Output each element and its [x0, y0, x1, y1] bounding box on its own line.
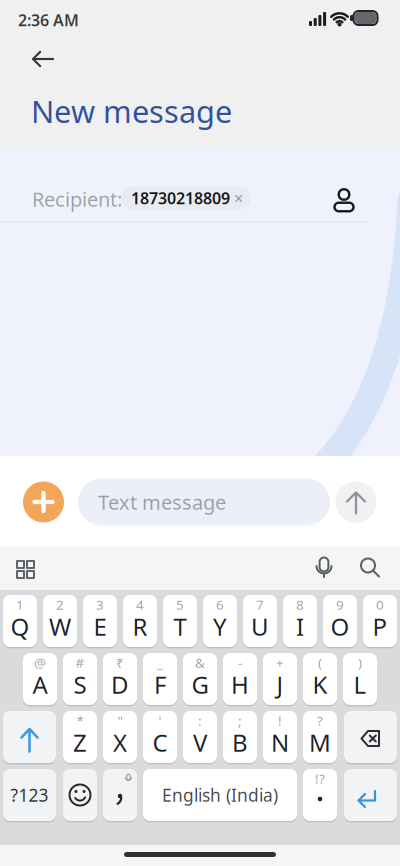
button[interactable]: ) — [343, 653, 377, 705]
staticText: 18730218809 — [131, 187, 230, 209]
button[interactable]: ? — [303, 711, 337, 763]
staticText: D — [111, 669, 129, 700]
staticText: U — [251, 611, 269, 642]
button[interactable]: 7 — [243, 595, 277, 647]
staticText: P — [372, 611, 387, 642]
staticText: New message — [31, 91, 232, 131]
staticText: L — [353, 669, 366, 700]
staticText: Z — [73, 727, 87, 758]
button[interactable]: " — [103, 711, 137, 763]
staticText: ?123 — [10, 783, 48, 806]
button[interactable]: _ — [143, 653, 177, 705]
button[interactable]: Add attachment — [23, 481, 64, 522]
staticText: W — [49, 611, 71, 642]
button[interactable]: Text message — [78, 478, 330, 525]
button[interactable]: Emoji — [63, 769, 97, 821]
staticText: ) — [358, 654, 362, 671]
staticText: S — [73, 669, 86, 700]
staticText: @ — [34, 654, 46, 671]
staticText: H — [231, 669, 249, 700]
staticText: ( — [318, 654, 322, 671]
staticText: G — [191, 669, 208, 700]
staticText: 2 — [56, 596, 64, 613]
staticText: I — [296, 611, 304, 642]
button[interactable]: @ — [23, 653, 57, 705]
staticText: 1 — [16, 596, 24, 613]
staticText: 9 — [336, 596, 344, 613]
staticText: N — [271, 727, 289, 758]
button[interactable]: Search — [359, 557, 380, 578]
button[interactable]: 18730218809 — [121, 187, 251, 209]
staticText: _ — [157, 654, 163, 671]
staticText: Text message — [98, 489, 226, 515]
staticText: × — [234, 187, 243, 209]
button[interactable]: : — [183, 711, 217, 763]
staticText: * — [76, 712, 83, 729]
button[interactable]: Enter — [344, 769, 397, 821]
staticText: J — [276, 669, 283, 700]
button[interactable]: Send — [335, 481, 376, 522]
button[interactable]: Symbols — [3, 769, 56, 821]
staticText: M — [309, 727, 331, 758]
staticText: English (India) — [162, 783, 278, 806]
button[interactable]: Shift — [3, 711, 56, 763]
staticText: # — [75, 654, 84, 671]
staticText: & — [195, 654, 205, 671]
staticText: Y — [213, 611, 227, 642]
staticText: 6 — [216, 596, 224, 613]
button[interactable]: & — [183, 653, 217, 705]
staticText: 5 — [176, 596, 184, 613]
button[interactable]: ₹ — [103, 653, 137, 705]
button[interactable]: # — [63, 653, 97, 705]
staticText: V — [193, 727, 207, 758]
staticText: " — [117, 712, 122, 729]
staticText: 3 — [96, 596, 104, 613]
staticText: 7 — [256, 596, 264, 613]
button[interactable]: - — [223, 653, 257, 705]
staticText: 0 — [376, 596, 384, 613]
button[interactable]: ( — [303, 653, 337, 705]
staticText: 4 — [136, 596, 144, 613]
button[interactable]: 4 — [123, 595, 157, 647]
staticText: R — [132, 611, 147, 642]
button[interactable]: + — [263, 653, 297, 705]
button[interactable]: 3 — [83, 595, 117, 647]
staticText: - — [238, 654, 242, 671]
staticText: 2:36 AM — [18, 9, 79, 31]
button[interactable]: 5 — [163, 595, 197, 647]
staticText: B — [232, 727, 248, 758]
button[interactable]: 8 — [283, 595, 317, 647]
button[interactable]: ' — [143, 711, 177, 763]
staticText: 8 — [296, 596, 304, 613]
staticText: ? — [317, 712, 323, 729]
staticText: O — [330, 611, 349, 642]
button[interactable]: ; — [223, 711, 257, 763]
staticText: Recipient: — [32, 186, 122, 212]
staticText: ! — [278, 712, 282, 729]
staticText: E — [93, 611, 106, 642]
button[interactable]: 0 — [363, 595, 397, 647]
staticText: + — [276, 654, 284, 671]
button[interactable]: 6 — [203, 595, 237, 647]
button[interactable]: Back — [31, 50, 54, 68]
button[interactable]: Period — [303, 769, 337, 821]
button[interactable]: Voice input — [313, 556, 335, 578]
staticText: K — [312, 669, 327, 700]
staticText: F — [154, 669, 166, 700]
button[interactable]: 2 — [43, 595, 77, 647]
button[interactable]: Space — [143, 769, 297, 821]
staticText: A — [32, 669, 47, 700]
button[interactable]: Choose contact — [330, 186, 358, 212]
staticText: Q — [10, 611, 29, 642]
button[interactable]: Comma — [103, 769, 137, 821]
staticText: C — [152, 727, 167, 758]
button[interactable]: 1 — [3, 595, 37, 647]
staticText: X — [113, 727, 127, 758]
staticText: T — [173, 611, 186, 642]
button[interactable]: * — [63, 711, 97, 763]
button[interactable]: ! — [263, 711, 297, 763]
button[interactable]: Delete — [344, 711, 397, 763]
staticText: !? — [315, 770, 325, 787]
button[interactable]: 9 — [323, 595, 357, 647]
button[interactable]: Keyboard menu — [16, 560, 35, 579]
